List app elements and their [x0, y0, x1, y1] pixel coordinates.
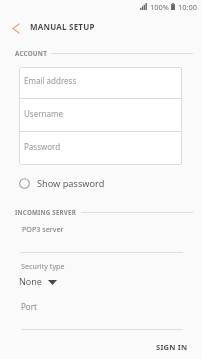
staticText: Username: [24, 108, 63, 119]
button[interactable]: Password: [19, 132, 182, 164]
staticText: POP3 server: [22, 224, 64, 234]
staticText: Security type: [21, 261, 65, 271]
staticText: Email address: [24, 75, 77, 86]
staticText: SIGN IN: [156, 342, 188, 352]
button[interactable]: Username: [19, 99, 182, 131]
button[interactable]: SIGN IN: [148, 335, 195, 359]
staticText: Show password: [37, 177, 105, 190]
button[interactable]: Show password: [0, 171, 202, 195]
staticText: Port: [21, 301, 37, 312]
button[interactable]: Navigate up: [3, 13, 29, 43]
staticText: None: [19, 275, 42, 287]
staticText: 10:00: [178, 2, 197, 12]
staticText: MANUAL SETUP: [30, 21, 95, 32]
staticText: INCOMING SERVER: [15, 208, 77, 216]
button[interactable]: None: [19, 274, 57, 288]
staticText: 100%: [150, 2, 169, 12]
staticText: Password: [24, 141, 61, 152]
staticText: ACCOUNT: [15, 49, 47, 58]
button[interactable]: Email address: [19, 67, 182, 98]
